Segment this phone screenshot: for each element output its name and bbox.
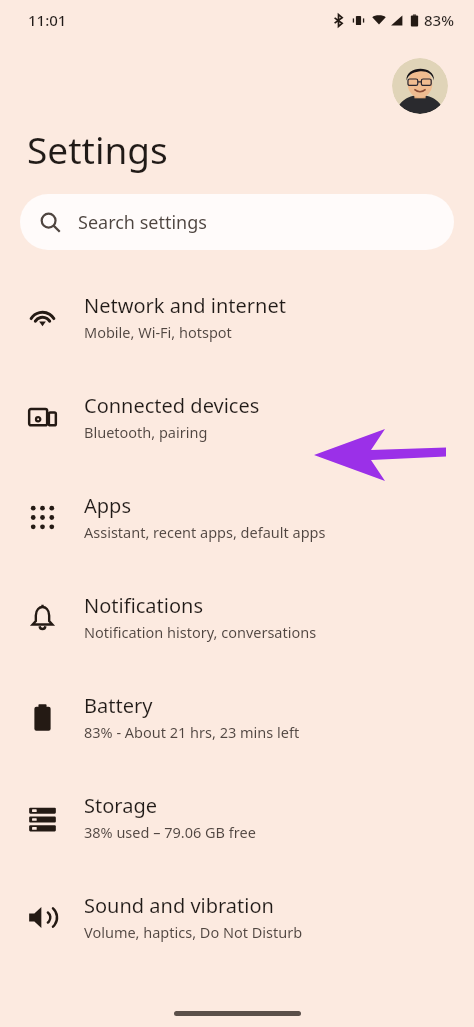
button[interactable]: Network and internet <box>0 267 474 367</box>
button[interactable]: Battery <box>0 667 474 767</box>
staticText: Search settings <box>78 210 207 235</box>
button[interactable]: Storage <box>0 767 474 867</box>
staticText: Assistant, recent apps, default apps <box>84 522 326 542</box>
staticText: Sound and vibration <box>84 892 274 919</box>
staticText: 83% <box>424 10 454 30</box>
staticText: Notifications <box>84 592 203 619</box>
staticText: Mobile, Wi-Fi, hotspot <box>84 322 232 342</box>
staticText: Apps <box>84 492 131 519</box>
staticText: Volume, haptics, Do Not Disturb <box>84 922 303 942</box>
staticText: Storage <box>84 792 157 819</box>
staticText: 38% used – 79.06 GB free <box>84 822 256 842</box>
button[interactable]: Notifications <box>0 567 474 667</box>
button[interactable]: Account profile <box>392 58 448 114</box>
staticText: Battery <box>84 692 153 719</box>
staticText: Notification history, conversations <box>84 622 317 642</box>
staticText: Network and internet <box>84 292 286 319</box>
staticText: Bluetooth, pairing <box>84 422 208 442</box>
staticText: 11:01 <box>28 10 67 30</box>
button[interactable]: Sound and vibration <box>0 867 474 967</box>
button[interactable]: Search settings <box>20 194 454 250</box>
button[interactable]: Connected devices <box>0 367 474 467</box>
staticText: Connected devices <box>84 392 260 419</box>
button[interactable]: Apps <box>0 467 474 567</box>
staticText: Settings <box>27 124 168 174</box>
staticText: 83% - About 21 hrs, 23 mins left <box>84 722 300 742</box>
